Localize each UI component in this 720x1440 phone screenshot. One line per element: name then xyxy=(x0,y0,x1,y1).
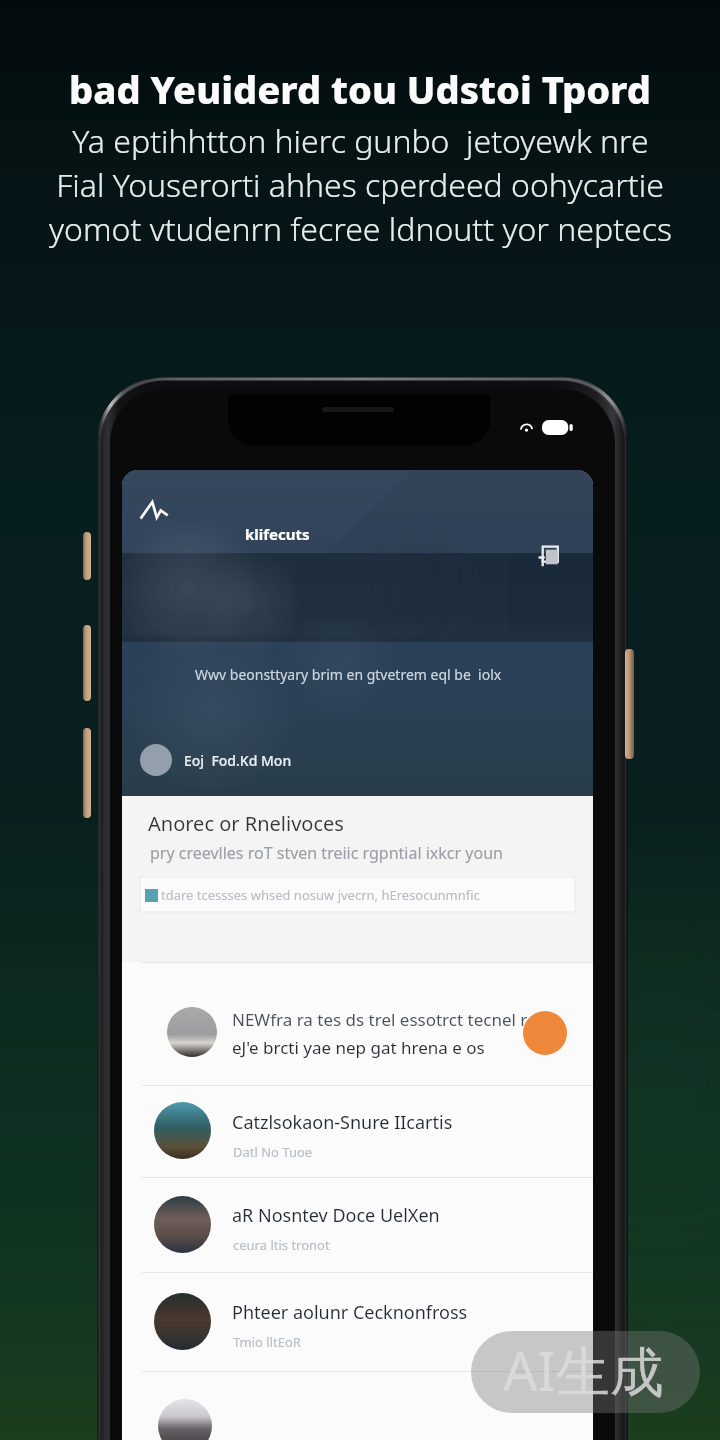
staticText: Anorec or Rnelivoces xyxy=(148,810,344,837)
staticText: Fial Youserorti ahhes cperdeed oohycarti… xyxy=(56,163,664,207)
staticText: klifecuts xyxy=(245,524,310,544)
staticText: Datl No Tuoe xyxy=(233,1143,313,1161)
staticText: Eoj Fod.Kd Mon xyxy=(184,751,292,770)
staticText: Wwv beonsttyary brim en gtvetrem eql be … xyxy=(195,665,502,684)
staticText: Tmio lltEoR xyxy=(233,1333,301,1351)
button[interactable]: aR Nosntev Doce UelXen xyxy=(122,1177,593,1272)
staticText: NEWfra ra tes ds trel essotrct tecnel r- xyxy=(232,1008,533,1031)
staticText: ceura ltis tronot xyxy=(233,1236,330,1254)
staticText: Ya eptihhtton hierc gunbo jetoyewk nre xyxy=(72,119,649,163)
button[interactable]: Layout xyxy=(533,540,567,574)
staticText: AI生成 xyxy=(503,1333,664,1407)
staticText: pry creevlles roT stven treiic rgpntial … xyxy=(150,842,503,864)
button[interactable]: Menu xyxy=(130,486,178,534)
staticText: Phteer aolunr Cecknonfross xyxy=(232,1300,468,1325)
staticText: eJ'e brcti yae nep gat hrena e os xyxy=(232,1036,485,1059)
staticText: Catzlsokaon-Snure IIcartis xyxy=(232,1110,453,1135)
button[interactable]: Catzlsokaon-Snure IIcartis xyxy=(122,1085,593,1177)
button[interactable]: tdare tcessses whsed nosuw jvecrn, hEres… xyxy=(140,877,575,912)
staticText: aR Nosntev Doce UelXen xyxy=(232,1203,440,1228)
staticText: yomot vtudenrn fecree ldnoutt yor neptec… xyxy=(49,207,672,251)
button[interactable]: Open xyxy=(523,1011,567,1055)
button[interactable]: Phteer aolunr Cecknonfross xyxy=(122,1272,593,1371)
button[interactable]: NEWfra ra tes ds trel essotrct tecnel r- xyxy=(122,963,593,1086)
staticText: tdare tcessses whsed nosuw jvecrn, hEres… xyxy=(161,886,480,904)
staticText: bad Yeuiderd tou Udstoi Tpord xyxy=(69,63,651,115)
